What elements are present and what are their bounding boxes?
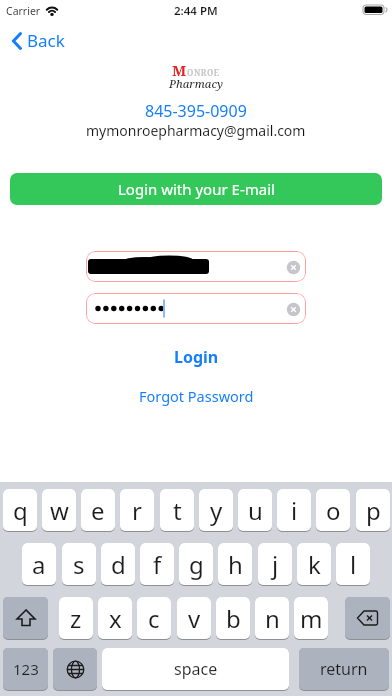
button[interactable]: Login	[174, 346, 219, 368]
button[interactable]: c	[137, 597, 171, 639]
button[interactable]: space	[102, 648, 289, 690]
staticText: 123	[13, 659, 39, 679]
staticText: return	[320, 658, 368, 680]
staticText: Carrier	[6, 4, 41, 18]
button[interactable]: t	[160, 489, 194, 531]
button[interactable]: z	[59, 597, 93, 639]
staticText: v	[188, 602, 201, 635]
staticText: r	[132, 494, 142, 527]
staticText: Pharmacy	[169, 76, 223, 91]
button[interactable]: Login with your E-mail	[10, 173, 382, 205]
button[interactable]: return	[299, 648, 389, 690]
button[interactable]: n	[255, 597, 289, 639]
button[interactable]: g	[179, 543, 213, 585]
button[interactable]: s	[62, 543, 96, 585]
staticText: j	[272, 548, 279, 581]
button[interactable]	[53, 648, 97, 690]
button[interactable]: l	[336, 543, 370, 585]
button[interactable]: f	[140, 543, 174, 585]
staticText: q	[13, 494, 28, 527]
staticText: z	[70, 602, 82, 635]
staticText: Login with your E-mail	[118, 179, 275, 199]
staticText: t	[173, 494, 182, 527]
staticText: y	[210, 494, 223, 527]
button[interactable]: r	[120, 489, 154, 531]
staticText: f	[153, 548, 162, 581]
button[interactable]	[345, 597, 390, 639]
staticText: x	[109, 602, 122, 635]
button[interactable]: m	[294, 597, 328, 639]
staticText: M	[172, 60, 187, 80]
staticText: g	[189, 548, 204, 581]
button[interactable]: j	[258, 543, 292, 585]
staticText: d	[111, 548, 126, 581]
staticText: e	[91, 494, 105, 527]
button[interactable]: u	[238, 489, 272, 531]
button[interactable]: b	[216, 597, 250, 639]
staticText: ONROE	[187, 67, 220, 78]
staticText: k	[308, 548, 321, 581]
button[interactable]: w	[42, 489, 76, 531]
button[interactable]: d	[101, 543, 135, 585]
staticText: 2:44 PM	[174, 3, 218, 19]
button[interactable]: Forgot Password	[139, 386, 254, 406]
button[interactable]: y	[199, 489, 233, 531]
button[interactable]: x	[98, 597, 132, 639]
staticText: b	[226, 602, 241, 635]
button[interactable]: Back	[10, 29, 65, 52]
staticText: space	[174, 658, 218, 680]
staticText: Back	[27, 29, 65, 52]
button[interactable]: p	[356, 489, 390, 531]
staticText: h	[228, 548, 243, 581]
button[interactable]	[86, 251, 306, 282]
button[interactable]	[3, 597, 48, 639]
staticText: m	[300, 602, 323, 635]
button[interactable]: o	[316, 489, 350, 531]
button[interactable]	[86, 293, 306, 324]
staticText: n	[265, 602, 280, 635]
button[interactable]: v	[177, 597, 211, 639]
button[interactable]: i	[277, 489, 311, 531]
staticText: o	[326, 494, 341, 527]
staticText: a	[32, 548, 46, 581]
staticText: w	[50, 494, 69, 527]
staticText: l	[350, 548, 357, 581]
button[interactable]: 123	[3, 648, 48, 690]
button[interactable]: h	[218, 543, 252, 585]
staticText: p	[366, 494, 381, 527]
staticText: c	[148, 602, 160, 635]
staticText: i	[291, 494, 298, 527]
button[interactable]: a	[22, 543, 56, 585]
staticText: mymonroepharmacy@gmail.com	[86, 121, 306, 140]
button[interactable]: q	[3, 489, 37, 531]
staticText: u	[248, 494, 263, 527]
staticText: s	[73, 548, 85, 581]
button[interactable]: 845-395-0909	[145, 100, 247, 122]
button[interactable]: e	[81, 489, 115, 531]
button[interactable]: k	[297, 543, 331, 585]
